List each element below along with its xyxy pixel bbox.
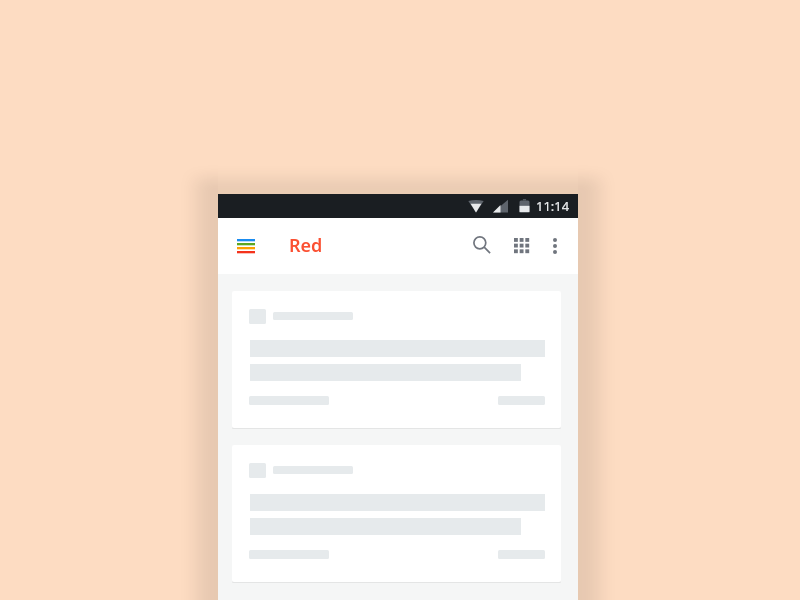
button[interactable]	[232, 291, 561, 428]
staticText: 11:14	[536, 197, 570, 215]
button[interactable]: More options	[542, 233, 568, 259]
button[interactable]: Google apps	[507, 231, 537, 261]
button[interactable]: Search	[467, 230, 497, 260]
staticText: Red	[289, 233, 323, 258]
button[interactable]: Navigation menu	[231, 231, 261, 261]
button[interactable]	[232, 445, 561, 582]
